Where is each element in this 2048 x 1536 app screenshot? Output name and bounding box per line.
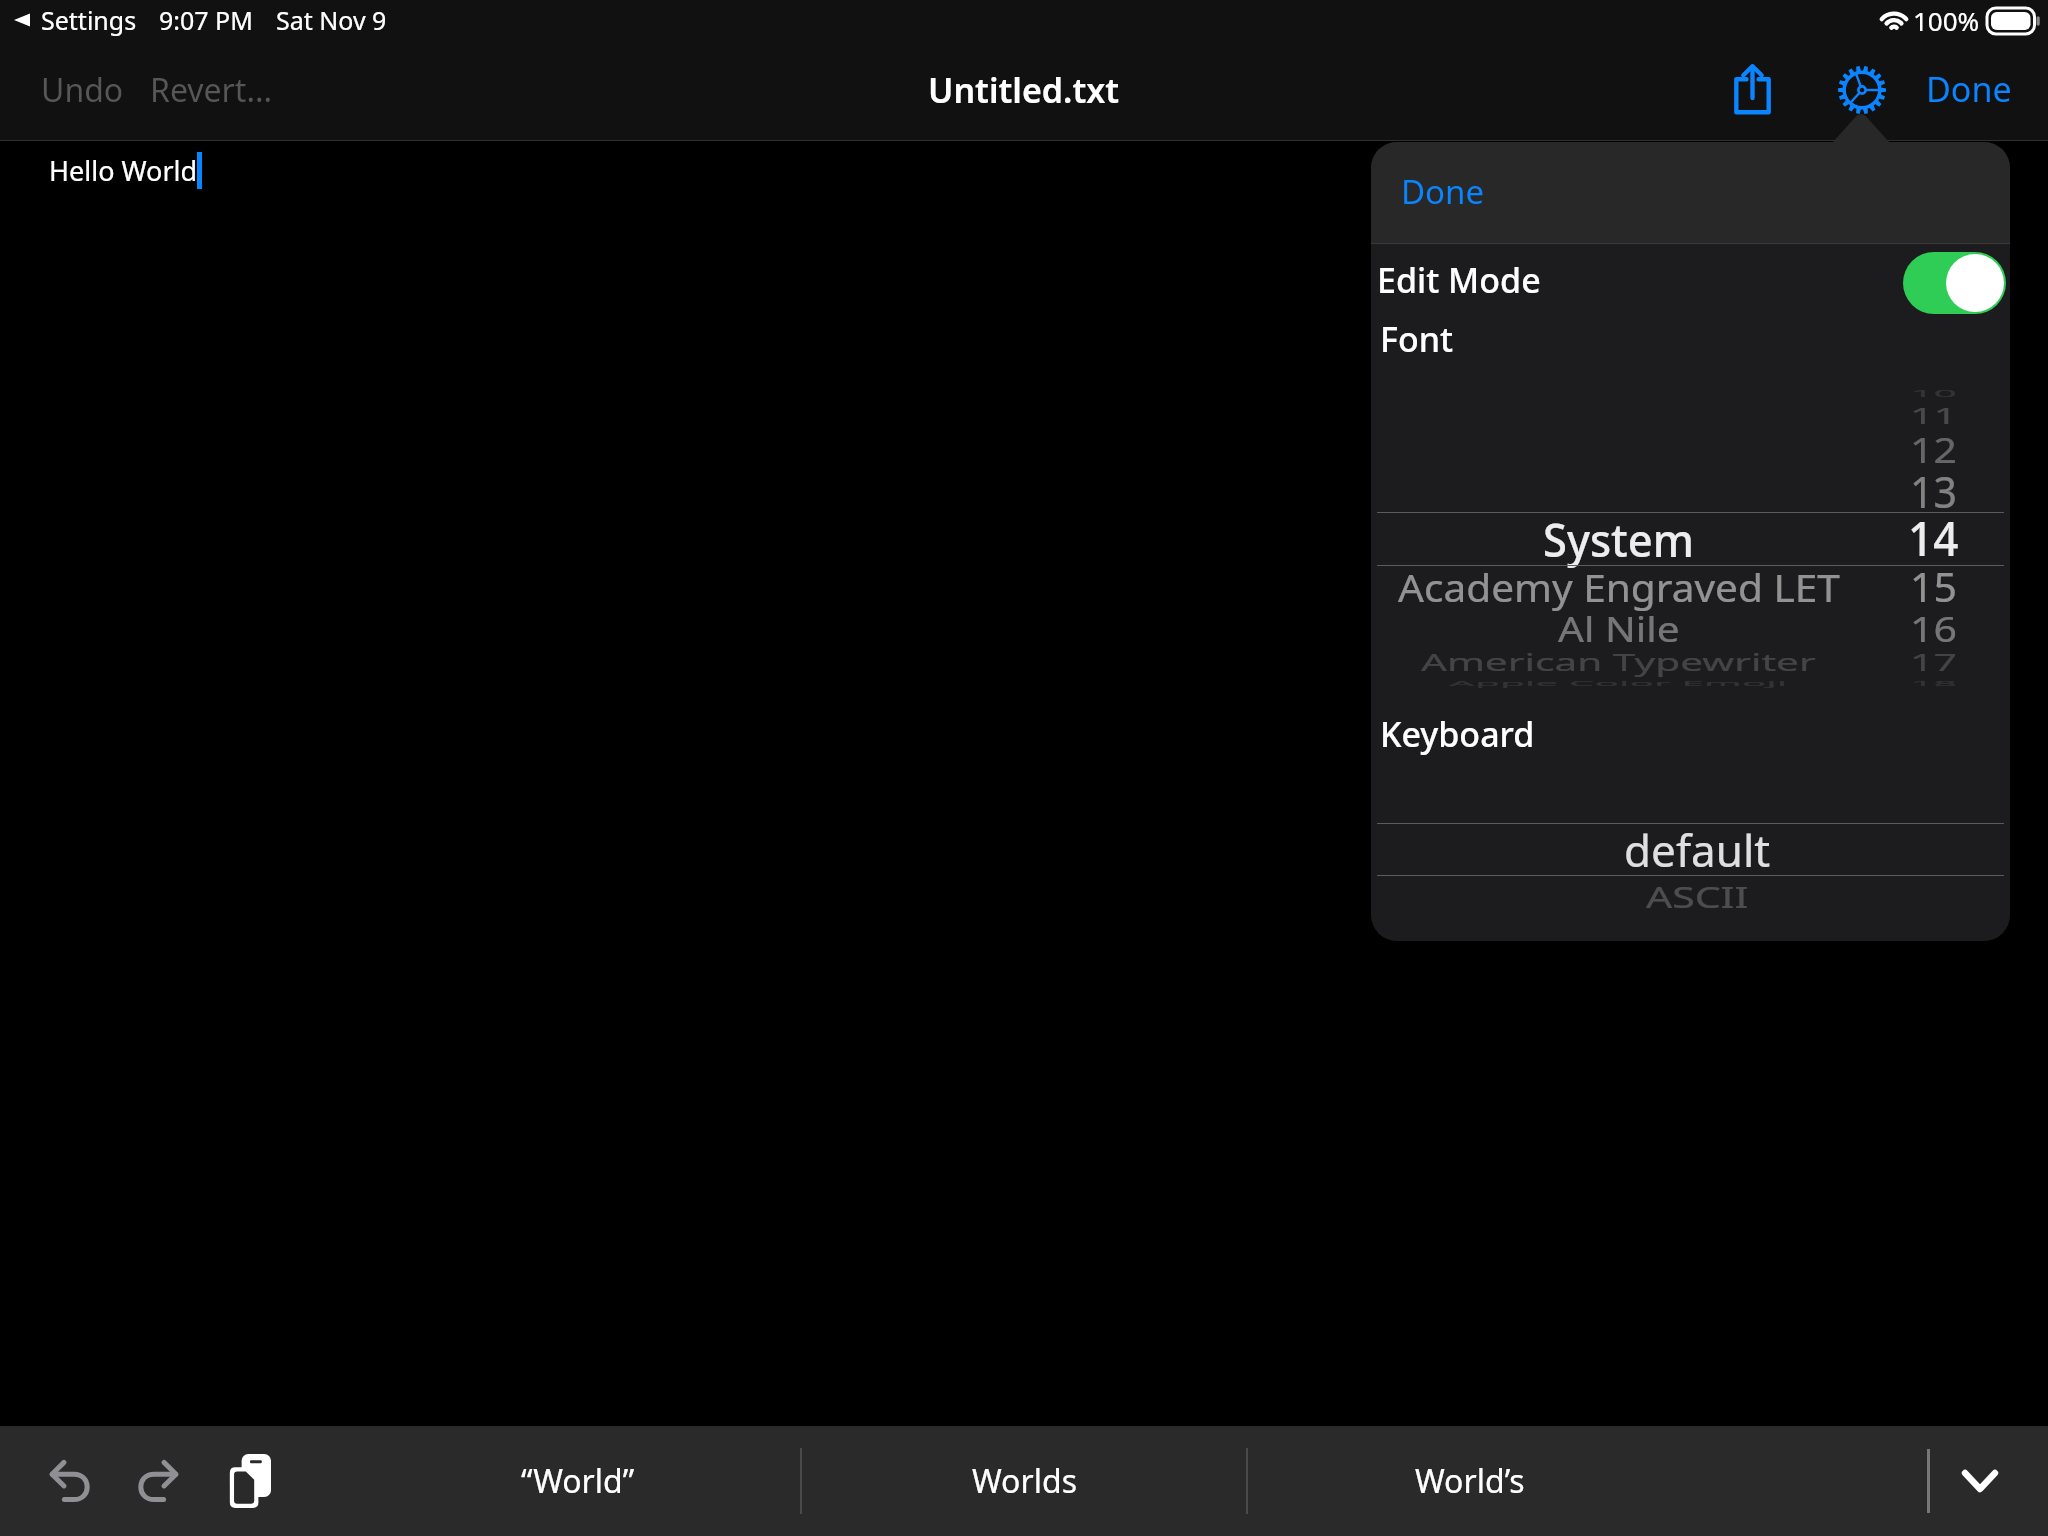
staticText: Keyboard xyxy=(1380,711,1535,757)
staticText: Apple Color Emoji xyxy=(1449,678,1788,688)
button[interactable]: Undo xyxy=(35,56,130,124)
button[interactable]: Share xyxy=(1714,51,1790,127)
button[interactable]: Done xyxy=(1393,161,1493,222)
staticText: Settings xyxy=(41,3,137,37)
button[interactable]: Edit Mode xyxy=(1371,244,2010,330)
staticText: 13 xyxy=(1910,462,1957,520)
staticText: Edit Mode xyxy=(1377,257,1541,303)
staticText: Hello World xyxy=(49,152,198,189)
button[interactable]: Revert... xyxy=(144,56,279,124)
staticText: Undo xyxy=(41,68,124,112)
button[interactable]: Redo xyxy=(118,1441,198,1521)
button[interactable]: “World” xyxy=(355,1426,801,1536)
staticText: Untitled.txt xyxy=(928,67,1120,113)
staticText: 14 xyxy=(1908,506,1959,570)
button[interactable]: Paste xyxy=(210,1441,290,1521)
staticText: Sat Nov 9 xyxy=(276,3,387,37)
staticText: Done xyxy=(1926,66,2012,112)
staticText: System xyxy=(1543,507,1695,570)
staticText: World’s xyxy=(1415,1459,1525,1503)
staticText: ASCII xyxy=(1646,876,1749,916)
staticText: default xyxy=(1624,820,1771,880)
staticText: American Typewriter xyxy=(1421,647,1816,678)
staticText: “World” xyxy=(521,1459,635,1503)
button[interactable]: Worlds xyxy=(801,1426,1247,1536)
staticText: Al Nile xyxy=(1558,606,1680,652)
staticText: 11 xyxy=(1910,400,1957,430)
button[interactable]: Settings xyxy=(1824,52,1900,128)
button[interactable]: Undo xyxy=(30,1441,110,1521)
button[interactable]: Hide keyboard xyxy=(1936,1437,2024,1525)
button[interactable]: Done xyxy=(1916,56,2022,122)
staticText: 17 xyxy=(1910,646,1957,678)
staticText: Font xyxy=(1380,316,1454,362)
staticText: 15 xyxy=(1910,560,1957,614)
staticText: 100% xyxy=(1913,3,1980,38)
staticText: 18 xyxy=(1910,678,1957,688)
staticText: Academy Engraved LET xyxy=(1398,561,1840,614)
staticText: Done xyxy=(1401,169,1485,214)
button[interactable]: World’s xyxy=(1247,1426,1693,1536)
staticText: 12 xyxy=(1910,425,1957,473)
staticText: Worlds xyxy=(972,1459,1077,1503)
staticText: 16 xyxy=(1910,605,1957,652)
staticText: 10 xyxy=(1910,387,1957,399)
staticText: 9:07 PM xyxy=(159,3,253,37)
staticText: Revert... xyxy=(150,68,273,112)
